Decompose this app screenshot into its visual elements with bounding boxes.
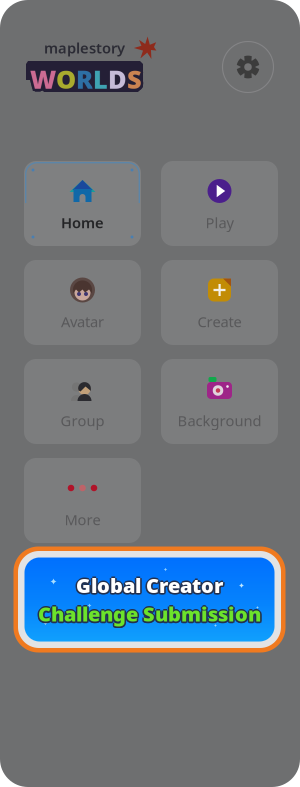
staticText: S bbox=[127, 65, 142, 99]
staticText: Challenge Submission bbox=[38, 600, 261, 627]
staticText: D bbox=[105, 62, 124, 96]
staticText: O bbox=[58, 60, 78, 94]
staticText: L bbox=[93, 59, 108, 93]
staticText: D bbox=[106, 64, 125, 98]
staticText: Challenge Submission bbox=[38, 599, 261, 625]
staticText: W bbox=[28, 60, 54, 94]
staticText: O bbox=[56, 65, 76, 99]
staticText: D bbox=[108, 62, 127, 96]
button[interactable]: Create bbox=[161, 260, 278, 345]
staticText: L bbox=[91, 64, 106, 98]
button[interactable]: Play bbox=[161, 161, 278, 246]
staticText: Global Creator bbox=[77, 573, 224, 600]
button[interactable]: Global Creator bbox=[13, 546, 285, 652]
staticText: W bbox=[30, 59, 56, 93]
staticText: L bbox=[95, 60, 110, 94]
staticText: W bbox=[27, 62, 53, 96]
button[interactable]: Home bbox=[24, 161, 141, 246]
staticText: Challenge Submission bbox=[37, 602, 260, 628]
staticText: W bbox=[30, 62, 56, 96]
staticText: Global Creator bbox=[74, 572, 221, 598]
staticText: W bbox=[32, 60, 58, 94]
staticText: Play bbox=[205, 213, 233, 232]
button[interactable]: Background bbox=[161, 359, 278, 444]
staticText: O bbox=[56, 62, 76, 96]
staticText: L bbox=[91, 60, 106, 94]
staticText: S bbox=[124, 62, 139, 96]
staticText: Avatar bbox=[61, 312, 104, 331]
staticText: D bbox=[108, 59, 127, 93]
staticText: O bbox=[54, 64, 74, 98]
staticText: O bbox=[54, 60, 74, 94]
staticText: D bbox=[108, 65, 127, 99]
staticText: W bbox=[32, 64, 58, 98]
staticText: Home bbox=[61, 213, 104, 232]
staticText: R bbox=[76, 65, 93, 99]
staticText: W bbox=[28, 64, 54, 98]
staticText: D bbox=[111, 62, 130, 96]
staticText: R bbox=[76, 59, 93, 93]
staticText: S bbox=[129, 64, 144, 98]
staticText: S bbox=[125, 60, 140, 94]
staticText: Group bbox=[60, 411, 104, 430]
staticText: O bbox=[59, 62, 79, 96]
staticText: S bbox=[130, 62, 145, 96]
staticText: R bbox=[74, 64, 91, 98]
staticText: O bbox=[53, 62, 73, 96]
staticText: R bbox=[73, 62, 90, 96]
staticText: Global Creator bbox=[75, 573, 222, 600]
staticText: L bbox=[90, 62, 105, 96]
staticText: Challenge Submission bbox=[38, 602, 261, 629]
staticText: R bbox=[76, 62, 93, 96]
button[interactable]: More bbox=[24, 458, 141, 543]
staticText: L bbox=[93, 62, 108, 96]
staticText: Challenge Submission bbox=[40, 600, 263, 627]
staticText: Global Creator bbox=[76, 570, 223, 597]
staticText: D bbox=[110, 60, 129, 94]
staticText: O bbox=[58, 64, 78, 98]
staticText: R bbox=[78, 64, 95, 98]
staticText: S bbox=[127, 59, 142, 93]
staticText: S bbox=[127, 62, 142, 96]
staticText: maplestory bbox=[44, 38, 125, 57]
staticText: R bbox=[78, 60, 95, 94]
staticText: Challenge Submission bbox=[39, 602, 262, 628]
staticText: L bbox=[96, 62, 111, 96]
staticText: S bbox=[125, 64, 140, 98]
staticText: W bbox=[33, 62, 59, 96]
button[interactable]: Settings bbox=[220, 39, 276, 95]
button[interactable]: Group bbox=[24, 359, 141, 444]
staticText: W bbox=[30, 65, 56, 99]
staticText: Global Creator bbox=[78, 572, 225, 598]
button[interactable]: Avatar bbox=[24, 260, 141, 345]
staticText: S bbox=[129, 60, 144, 94]
staticText: L bbox=[95, 64, 110, 98]
staticText: L bbox=[93, 65, 108, 99]
staticText: R bbox=[79, 62, 96, 96]
staticText: O bbox=[56, 59, 76, 93]
staticText: R bbox=[74, 60, 91, 94]
staticText: Background bbox=[177, 411, 261, 430]
staticText: D bbox=[110, 64, 129, 98]
staticText: Global Creator bbox=[76, 573, 223, 600]
staticText: Create bbox=[197, 312, 241, 331]
staticText: More bbox=[64, 510, 100, 529]
staticText: Challenge Submission bbox=[36, 600, 259, 627]
staticText: Global Creator bbox=[76, 572, 223, 598]
staticText: D bbox=[106, 60, 125, 94]
